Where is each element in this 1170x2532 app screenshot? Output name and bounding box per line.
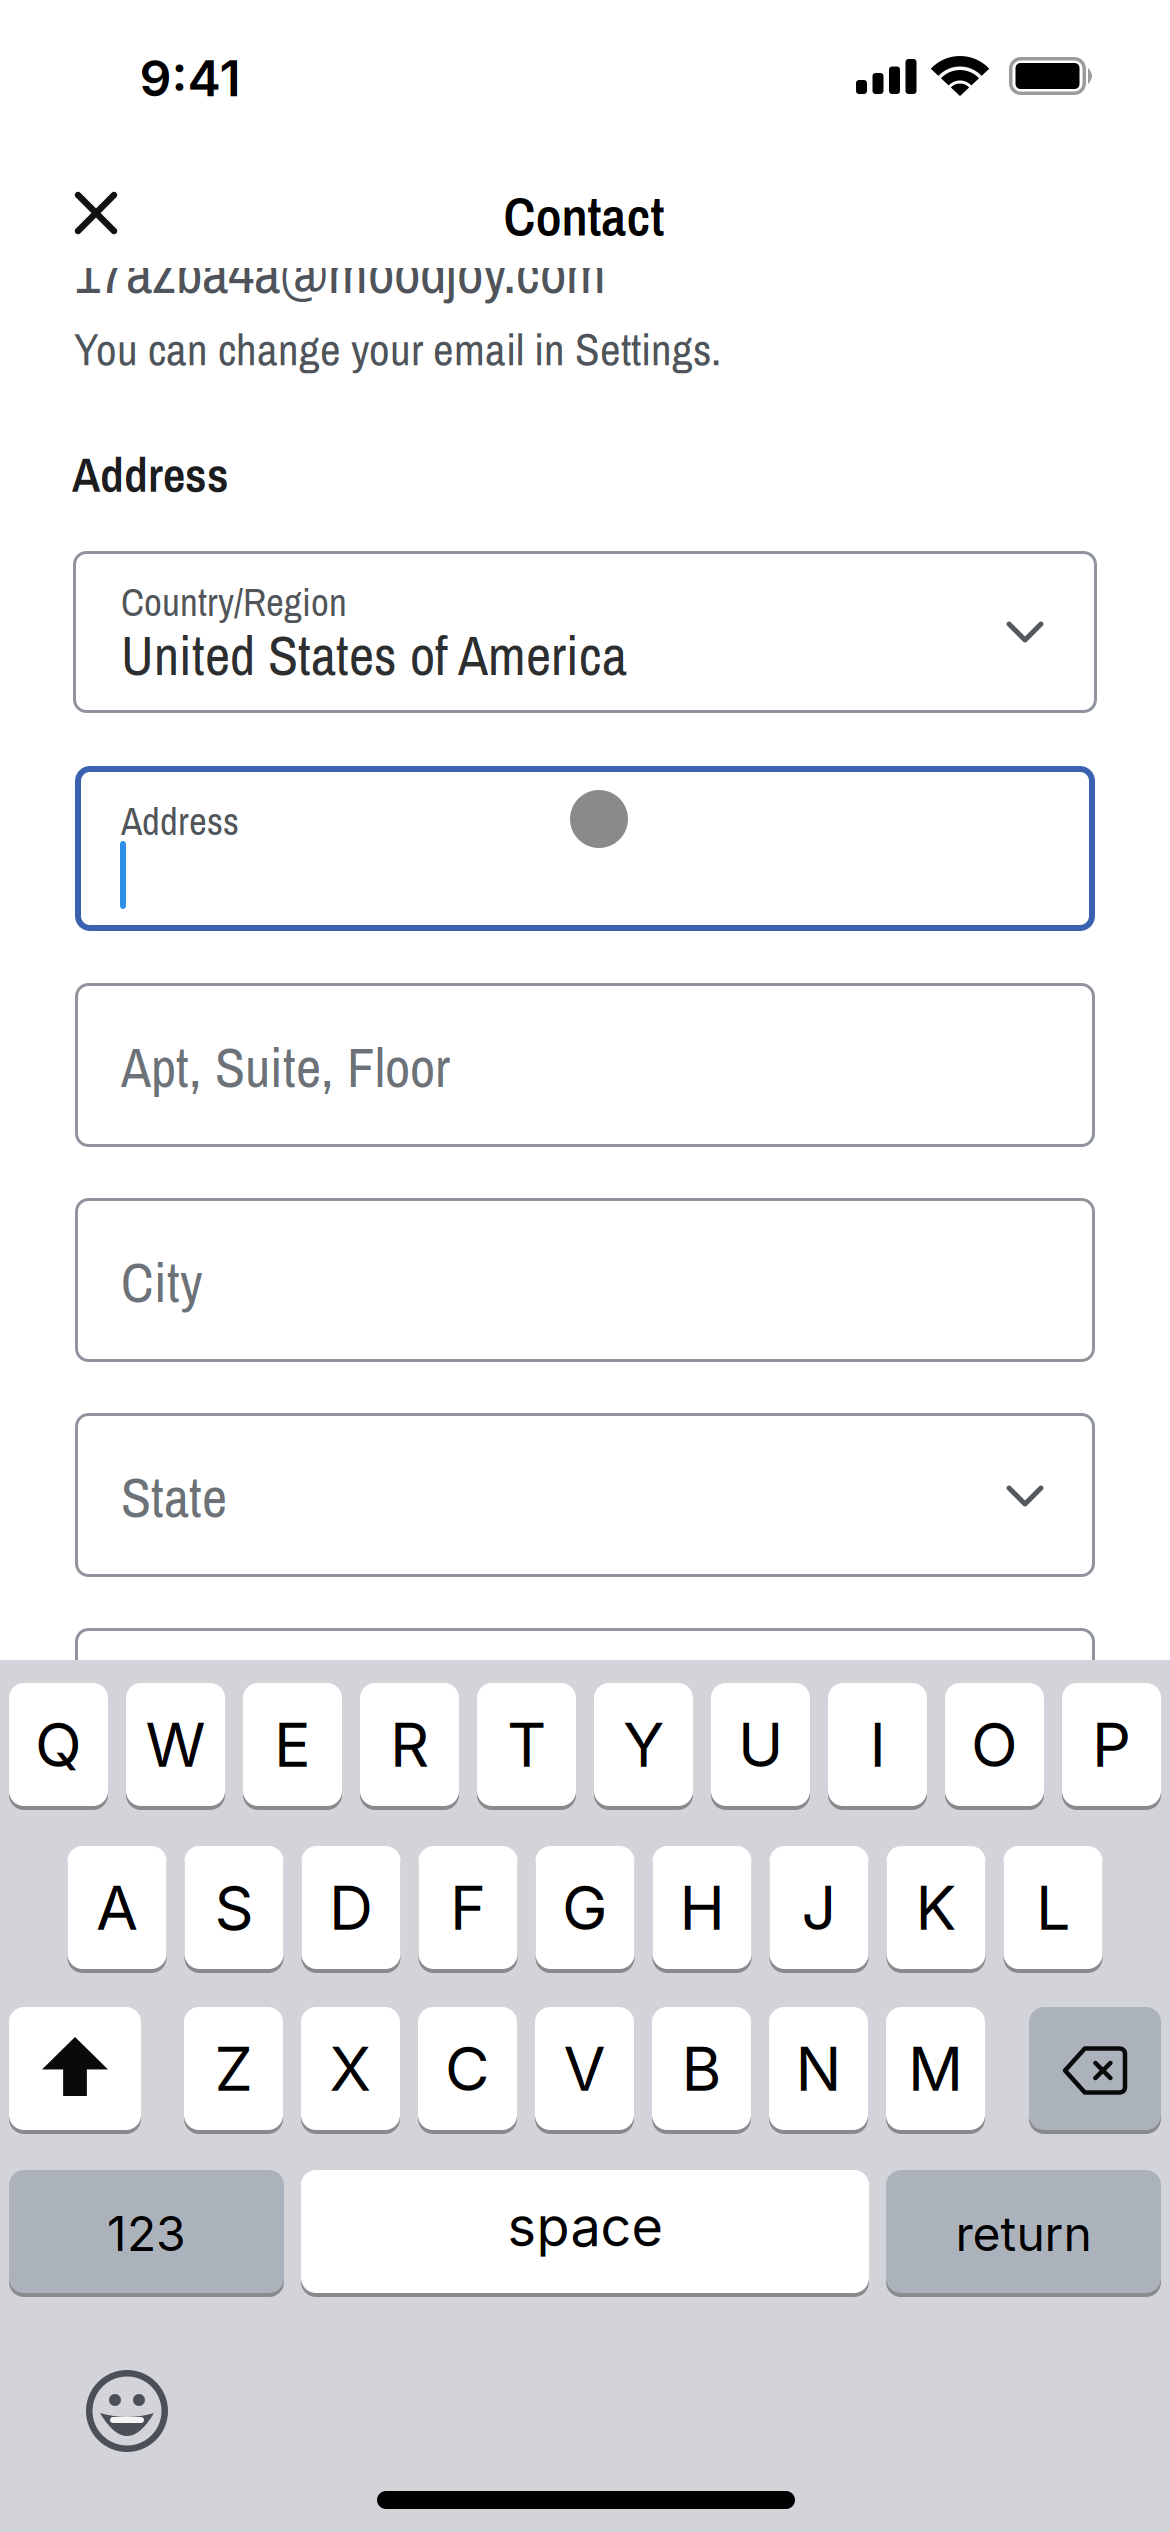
- staticText: M: [908, 2032, 963, 2105]
- button[interactable]: S: [184, 1846, 283, 1973]
- button[interactable]: Address: [75, 766, 1095, 931]
- staticText: T: [507, 1708, 546, 1781]
- staticText: R: [390, 1708, 429, 1781]
- staticText: 9:41: [139, 48, 240, 108]
- staticText: V: [563, 2032, 605, 2105]
- button[interactable]: City: [75, 1198, 1095, 1362]
- staticText: City: [121, 1245, 203, 1319]
- button[interactable]: U: [711, 1683, 810, 1810]
- button[interactable]: Shift: [9, 2007, 141, 2134]
- staticText: U: [738, 1708, 783, 1781]
- button[interactable]: space: [301, 2170, 869, 2297]
- staticText: return: [955, 2204, 1091, 2263]
- staticText: Apt, Suite, Floor: [121, 1030, 450, 1104]
- button[interactable]: G: [535, 1846, 634, 1973]
- button[interactable]: B: [652, 2007, 751, 2134]
- staticText: 123: [107, 2204, 186, 2263]
- staticText: space: [507, 2194, 662, 2259]
- button[interactable]: Apt, Suite, Floor: [75, 983, 1095, 1147]
- staticText: 17azba4a@moodjoy.com: [74, 233, 606, 311]
- staticText: Country/Region: [121, 576, 347, 628]
- staticText: W: [145, 1708, 205, 1781]
- staticText: Address: [72, 441, 229, 507]
- button[interactable]: P: [1062, 1683, 1161, 1810]
- staticText: K: [915, 1871, 956, 1944]
- button[interactable]: Delete: [1029, 2007, 1161, 2134]
- staticText: E: [274, 1708, 311, 1781]
- staticText: United States of America: [121, 618, 627, 692]
- button[interactable]: D: [301, 1846, 400, 1973]
- button[interactable]: V: [535, 2007, 634, 2134]
- button[interactable]: W: [126, 1683, 225, 1810]
- button[interactable]: Emoji: [85, 2369, 169, 2453]
- staticText: X: [329, 2032, 371, 2105]
- button[interactable]: X: [301, 2007, 400, 2134]
- button[interactable]: L: [1003, 1846, 1102, 1973]
- button[interactable]: Q: [9, 1683, 108, 1810]
- staticText: Y: [623, 1708, 664, 1781]
- staticText: H: [679, 1871, 724, 1944]
- button[interactable]: J: [769, 1846, 868, 1973]
- button[interactable]: C: [418, 2007, 517, 2134]
- button[interactable]: K: [886, 1846, 985, 1973]
- button[interactable]: N: [769, 2007, 868, 2134]
- button[interactable]: T: [477, 1683, 576, 1810]
- staticText: State: [121, 1460, 227, 1534]
- staticText: B: [681, 2032, 721, 2105]
- button[interactable]: M: [886, 2007, 985, 2134]
- staticText: N: [795, 2032, 841, 2105]
- button[interactable]: ZIP Code: [75, 1628, 1095, 1792]
- staticText: F: [450, 1871, 486, 1944]
- staticText: Q: [35, 1708, 82, 1781]
- staticText: I: [869, 1708, 885, 1781]
- staticText: D: [329, 1871, 373, 1944]
- button[interactable]: I: [828, 1683, 927, 1810]
- button[interactable]: E: [243, 1683, 342, 1810]
- button[interactable]: A: [67, 1846, 166, 1973]
- staticText: A: [96, 1871, 138, 1944]
- staticText: G: [562, 1871, 608, 1944]
- staticText: O: [971, 1708, 1018, 1781]
- button[interactable]: 123: [9, 2170, 284, 2297]
- button[interactable]: F: [418, 1846, 517, 1973]
- staticText: S: [214, 1871, 253, 1944]
- staticText: You can change your email in Settings.: [74, 319, 721, 379]
- staticText: J: [801, 1871, 836, 1944]
- button[interactable]: H: [652, 1846, 751, 1973]
- staticText: Contact: [503, 180, 664, 252]
- staticText: C: [445, 2032, 490, 2105]
- button[interactable]: Country/Region: [73, 551, 1097, 713]
- button[interactable]: return: [886, 2170, 1161, 2297]
- button[interactable]: O: [945, 1683, 1044, 1810]
- staticText: Address: [121, 795, 239, 847]
- button[interactable]: Close: [64, 181, 128, 245]
- button[interactable]: Y: [594, 1683, 693, 1810]
- staticText: L: [1036, 1871, 1070, 1944]
- staticText: P: [1092, 1708, 1131, 1781]
- staticText: Z: [214, 2032, 252, 2105]
- button[interactable]: Z: [184, 2007, 283, 2134]
- button[interactable]: State: [75, 1413, 1095, 1577]
- button[interactable]: R: [360, 1683, 459, 1810]
